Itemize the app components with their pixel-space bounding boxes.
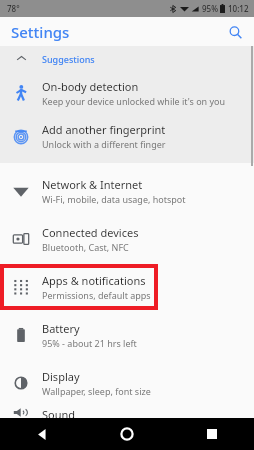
button[interactable]: Recent apps xyxy=(169,418,254,450)
staticText: Wi-Fi, mobile, data usage, hotspot xyxy=(42,193,186,205)
staticText: On-body detection xyxy=(42,79,139,94)
staticText: Network & Internet xyxy=(42,177,143,192)
button[interactable]: Connected devices xyxy=(0,215,254,263)
staticText: Display xyxy=(42,369,80,384)
staticText: Wallpaper, sleep, font size xyxy=(42,385,151,397)
button[interactable]: Apps & notifications xyxy=(0,263,254,311)
staticText: Battery xyxy=(42,321,80,336)
staticText: Connected devices xyxy=(42,225,139,240)
button[interactable]: Search xyxy=(223,20,247,44)
button[interactable]: Suggestions xyxy=(0,46,254,71)
staticText: Keep your device unlocked while it's on … xyxy=(42,95,226,107)
staticText: Suggestions xyxy=(42,53,95,65)
staticText: 95% - about 21 hrs left xyxy=(42,337,137,349)
staticText: 10:12 xyxy=(228,3,249,14)
staticText: 95% xyxy=(202,3,218,14)
staticText: Bluetooth, Cast, NFC xyxy=(42,241,129,253)
button[interactable]: Home xyxy=(84,418,169,450)
staticText: Unlock with a different finger xyxy=(42,138,166,150)
button[interactable]: Network & Internet xyxy=(0,167,254,215)
staticText: Permissions, default apps xyxy=(42,289,151,301)
staticText: 78° xyxy=(7,3,20,14)
staticText: Apps & notifications xyxy=(42,273,146,288)
button[interactable]: Back xyxy=(0,418,84,450)
button[interactable]: Display xyxy=(0,359,254,407)
button[interactable]: Battery xyxy=(0,311,254,359)
button[interactable]: Add another fingerprint xyxy=(0,114,254,157)
button[interactable]: On-body detection xyxy=(0,71,254,114)
staticText: Sound xyxy=(42,407,76,418)
staticText: Settings xyxy=(11,22,70,42)
staticText: Add another fingerprint xyxy=(42,122,166,137)
button[interactable]: Sound xyxy=(0,407,254,418)
